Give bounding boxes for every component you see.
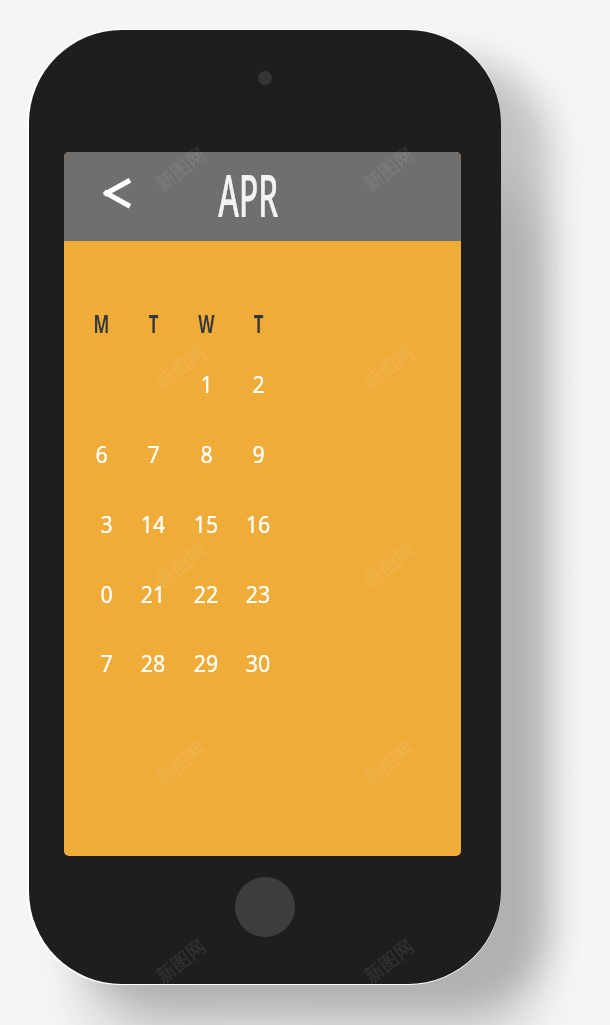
- button[interactable]: Home: [235, 877, 295, 937]
- staticText: 3: [100, 509, 113, 540]
- button[interactable]: 6: [75, 432, 127, 476]
- button[interactable]: 15: [180, 502, 232, 546]
- staticText: APR: [218, 155, 279, 234]
- staticText: 新图网: [151, 143, 211, 197]
- button[interactable]: 1: [180, 362, 232, 406]
- staticText: 22: [194, 579, 218, 610]
- staticText: 28: [141, 648, 165, 679]
- staticText: 2: [252, 369, 265, 400]
- staticText: 8: [200, 439, 213, 470]
- button[interactable]: Back: [92, 167, 142, 219]
- button[interactable]: 23: [232, 572, 284, 616]
- button[interactable]: 29: [180, 641, 232, 685]
- button[interactable]: 21: [127, 572, 179, 616]
- staticText: 新图网: [359, 737, 419, 791]
- staticText: 0: [100, 579, 113, 610]
- button[interactable]: 2: [232, 362, 284, 406]
- button[interactable]: 7: [80, 641, 132, 685]
- button[interactable]: 7: [127, 432, 179, 476]
- button[interactable]: 16: [232, 502, 284, 546]
- staticText: 23: [246, 579, 270, 610]
- staticText: 16: [246, 509, 270, 540]
- staticText: 新图网: [359, 539, 419, 593]
- staticText: W: [198, 306, 215, 341]
- staticText: 1: [200, 369, 213, 400]
- button[interactable]: 3: [80, 502, 132, 546]
- staticText: 29: [194, 648, 218, 679]
- button[interactable]: 30: [232, 641, 284, 685]
- staticText: 新图网: [359, 143, 419, 197]
- staticText: 6: [95, 439, 108, 470]
- staticText: 新图网: [151, 539, 211, 593]
- staticText: 新图网: [151, 341, 211, 395]
- staticText: 7: [147, 439, 160, 470]
- staticText: M: [93, 306, 110, 341]
- button[interactable]: 22: [180, 572, 232, 616]
- staticText: 新图网: [359, 341, 419, 395]
- staticText: 新图网: [151, 737, 211, 791]
- staticText: 9: [252, 439, 265, 470]
- staticText: 7: [100, 648, 113, 679]
- staticText: 新图网: [359, 935, 419, 989]
- button[interactable]: 14: [127, 502, 179, 546]
- staticText: T: [254, 306, 263, 341]
- staticText: 30: [246, 648, 270, 679]
- button[interactable]: 0: [80, 572, 132, 616]
- staticText: 新图网: [151, 935, 211, 989]
- staticText: 14: [141, 509, 165, 540]
- staticText: T: [149, 306, 158, 341]
- button[interactable]: 9: [232, 432, 284, 476]
- button[interactable]: 28: [127, 641, 179, 685]
- button[interactable]: 8: [180, 432, 232, 476]
- staticText: 21: [141, 579, 165, 610]
- staticText: 15: [194, 509, 218, 540]
